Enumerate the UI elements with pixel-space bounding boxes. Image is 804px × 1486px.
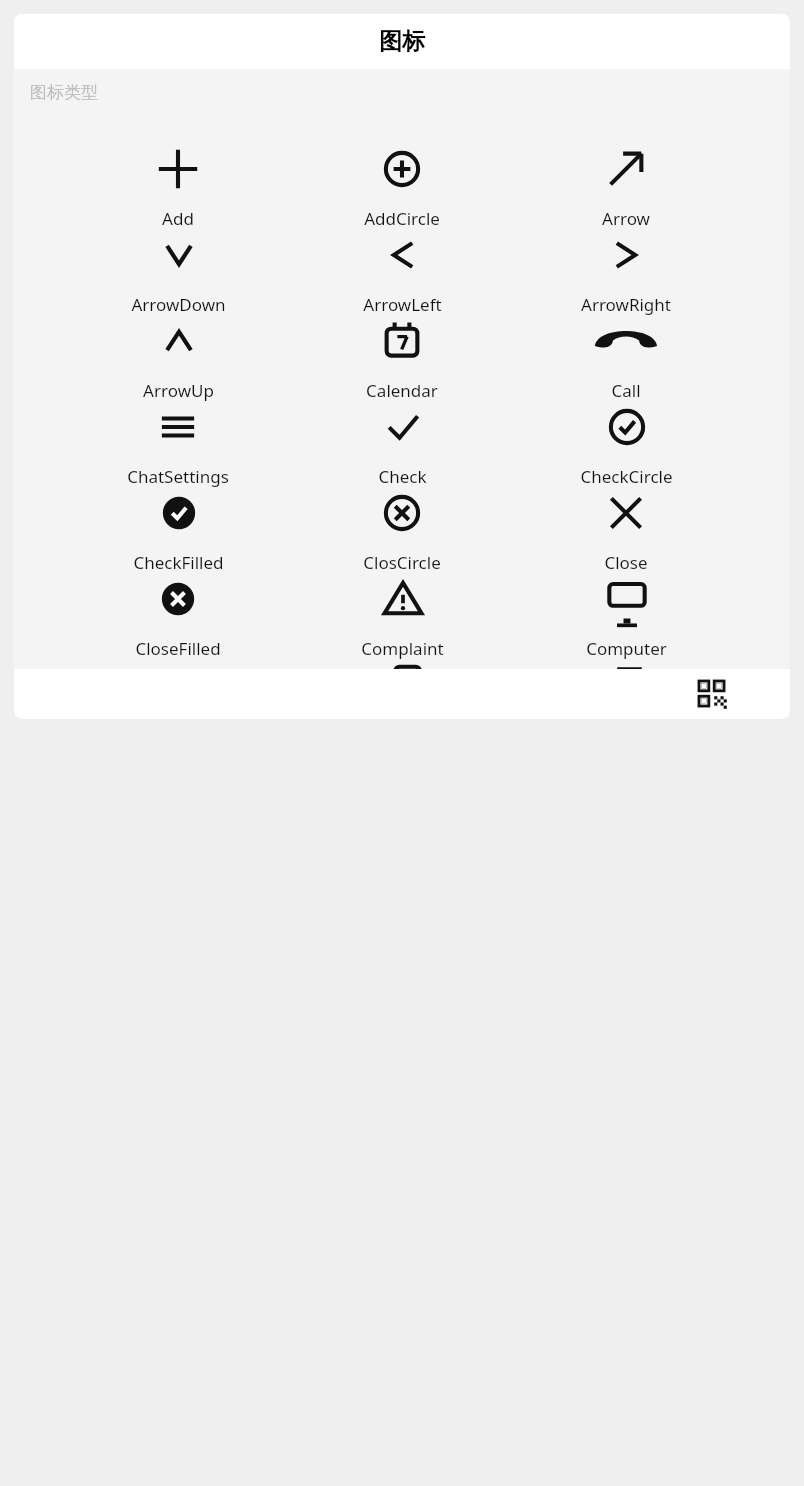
staticText: Check: [378, 465, 427, 488]
button[interactable]: ClosCircle: [363, 489, 441, 574]
other: Copy: [378, 661, 426, 709]
button[interactable]: ChatSettings: [127, 403, 229, 488]
other: AddCircle: [378, 145, 426, 193]
button[interactable]: Close: [602, 489, 650, 574]
button[interactable]: Add: [154, 145, 202, 230]
other: Crop: [602, 661, 650, 709]
staticText: ArrowRight: [581, 293, 671, 316]
staticText: Arrow: [602, 207, 650, 230]
staticText: Computer: [586, 637, 667, 660]
button[interactable]: CloseFilled: [135, 575, 221, 660]
button[interactable]: CheckCircle: [580, 403, 673, 488]
other: ArrowRight: [602, 231, 650, 279]
other: ChatSettings: [154, 403, 202, 451]
other: Check: [379, 403, 427, 451]
other: Computer: [603, 575, 651, 623]
button[interactable]: CheckFilled: [133, 489, 224, 574]
other: Calendar: [378, 317, 426, 365]
button[interactable]: ArrowUp: [143, 317, 214, 402]
other: Add: [154, 145, 202, 193]
staticText: Add: [162, 207, 194, 230]
button[interactable]: Crop: [602, 661, 650, 719]
button[interactable]: Arrow: [602, 145, 650, 230]
other: ArrowDown: [155, 231, 203, 279]
other: CheckFilled: [155, 489, 203, 537]
staticText: CloseFilled: [135, 637, 221, 660]
button[interactable]: ArrowDown: [131, 231, 226, 316]
staticText: Close: [604, 551, 648, 574]
other: Arrow: [602, 145, 650, 193]
staticText: 图标类型: [30, 82, 98, 103]
other: Circle: [154, 661, 202, 709]
other: Complaint: [379, 575, 427, 623]
staticText: ArrowUp: [143, 379, 214, 402]
other: CloseFilled: [154, 575, 202, 623]
staticText: CheckFilled: [133, 551, 224, 574]
staticText: Call: [611, 379, 641, 402]
other: CheckCircle: [603, 403, 651, 451]
staticText: AddCircle: [364, 207, 440, 230]
other: Close: [602, 489, 650, 537]
other: Call: [602, 317, 650, 365]
button[interactable]: Scan QR code: [689, 671, 735, 717]
staticText: ClosCircle: [363, 551, 441, 574]
button[interactable]: ArrowRight: [581, 231, 671, 316]
other: ClosCircle: [378, 489, 426, 537]
button[interactable]: Calendar: [366, 317, 438, 402]
button[interactable]: AddCircle: [364, 145, 440, 230]
staticText: ArrowLeft: [363, 293, 442, 316]
other: ArrowUp: [155, 317, 203, 365]
button[interactable]: ArrowLeft: [363, 231, 442, 316]
staticText: CheckCircle: [580, 465, 673, 488]
staticText: ChatSettings: [127, 465, 229, 488]
button[interactable]: Check: [378, 403, 427, 488]
button[interactable]: Complaint: [361, 575, 444, 660]
staticText: Calendar: [366, 379, 438, 402]
button[interactable]: Call: [602, 317, 650, 402]
staticText: 图标: [379, 27, 425, 56]
staticText: Complaint: [361, 637, 444, 660]
button[interactable]: Computer: [586, 575, 667, 660]
staticText: ArrowDown: [131, 293, 226, 316]
other: ArrowLeft: [379, 231, 427, 279]
button[interactable]: Copy: [378, 661, 426, 719]
button[interactable]: Circle: [154, 661, 202, 719]
